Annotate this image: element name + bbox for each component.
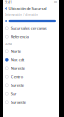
button[interactable]: Centro (3, 72, 59, 81)
button[interactable]: Norte (3, 47, 59, 55)
staticText: Ubicación de Sucursal (8, 6, 46, 11)
staticText: 9:41 (5, 1, 12, 4)
button[interactable]: Sureste (3, 81, 59, 89)
staticText: Norte (11, 49, 21, 54)
button[interactable]: Sur (3, 89, 59, 98)
staticText: ••• (54, 1, 57, 4)
button[interactable]: Noreste (3, 64, 59, 72)
staticText: Intersección / dirección (5, 13, 38, 17)
button[interactable]: Suroeste (3, 98, 59, 106)
staticText: Referencia (11, 34, 29, 39)
button[interactable]: Referencia (3, 32, 59, 41)
staticText: Suroeste (11, 100, 26, 105)
staticText: Noreste (11, 66, 25, 71)
staticText: Sureste (11, 83, 24, 88)
button[interactable]: Nor. cdt (3, 55, 59, 64)
staticText: Centro (11, 74, 23, 79)
staticText: Sur (11, 91, 17, 96)
staticText: Sucursales cercanas (11, 26, 47, 31)
staticText: ZONA (5, 42, 12, 46)
button[interactable]: Back (3, 5, 8, 12)
button[interactable]: Sucursales cercanas (3, 24, 59, 32)
staticText: Nor. cdt (11, 57, 24, 62)
